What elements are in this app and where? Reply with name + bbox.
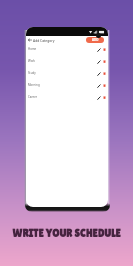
button[interactable]: Edit (96, 59, 101, 64)
staticText: ADD (92, 38, 99, 42)
button[interactable]: Morning (26, 79, 108, 91)
staticText: Home (28, 47, 37, 51)
button[interactable]: ADD (86, 37, 104, 43)
button[interactable]: Edit (96, 71, 101, 76)
button[interactable]: Home (26, 43, 108, 55)
staticText: Add Category (33, 38, 55, 42)
button[interactable]: Delete (102, 83, 107, 88)
staticText: Work (28, 59, 36, 63)
button[interactable]: Delete (102, 95, 107, 100)
staticText: Career (28, 95, 38, 99)
staticText: Study (28, 71, 36, 75)
button[interactable]: Back (27, 37, 32, 43)
button[interactable]: Edit (96, 47, 101, 52)
button[interactable]: Delete (102, 59, 107, 64)
button[interactable]: Study (26, 67, 108, 79)
button[interactable]: Edit (96, 95, 101, 100)
button[interactable]: Work (26, 55, 108, 67)
staticText: WRITE YOUR SCHEDULE (0, 227, 133, 239)
button[interactable]: Edit (96, 83, 101, 88)
button[interactable]: Delete (102, 47, 107, 52)
button[interactable]: Delete (102, 71, 107, 76)
staticText: Morning (28, 83, 40, 87)
button[interactable]: Career (26, 91, 108, 103)
